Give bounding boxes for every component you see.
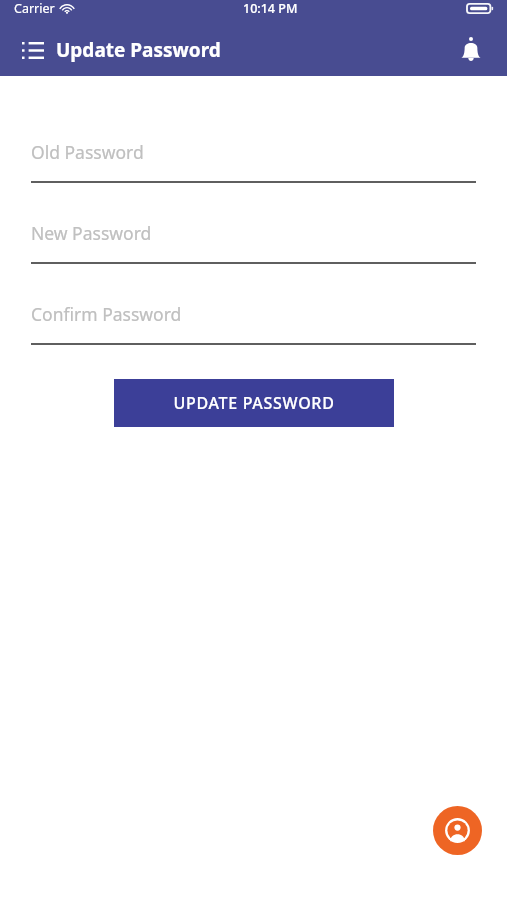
staticText: Confirm Password xyxy=(31,302,182,326)
button[interactable]: Account xyxy=(433,806,482,855)
staticText: New Password xyxy=(31,221,152,245)
button[interactable]: Confirm Password xyxy=(31,298,476,345)
button[interactable]: UPDATE PASSWORD xyxy=(114,379,394,427)
staticText: 10:14 PM xyxy=(243,0,298,17)
staticText: UPDATE PASSWORD xyxy=(173,392,335,414)
button[interactable]: Old Password xyxy=(31,136,476,183)
button[interactable]: New Password xyxy=(31,217,476,264)
button[interactable]: Open navigation menu xyxy=(12,29,54,71)
button[interactable]: Notifications xyxy=(449,28,493,72)
staticText: Update Password xyxy=(56,37,221,63)
staticText: Old Password xyxy=(31,140,144,164)
staticText: Carrier xyxy=(14,0,55,17)
